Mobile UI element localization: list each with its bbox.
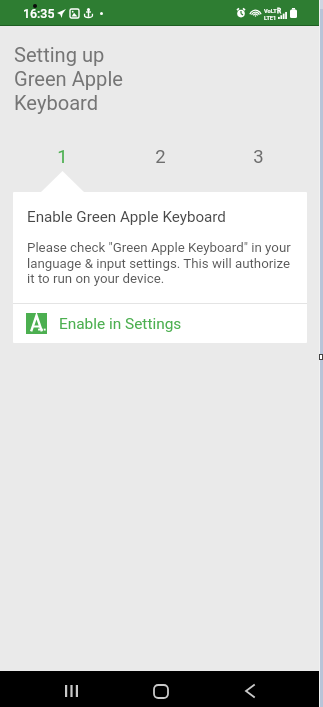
staticText: 16:35 <box>23 6 55 21</box>
staticText: 2 <box>155 146 166 168</box>
staticText: Keyboard <box>14 91 99 115</box>
button[interactable]: Enable in Settings <box>13 304 307 343</box>
staticText: Enable Green Apple Keyboard <box>27 208 226 226</box>
staticText: Please check "Green Apple Keyboard" in y… <box>27 240 293 286</box>
button[interactable]: Home <box>134 671 188 707</box>
staticText: Setting up <box>14 43 105 67</box>
staticText: Green Apple <box>14 67 123 91</box>
staticText: VoLT <box>264 8 277 15</box>
button[interactable]: Back <box>223 671 277 707</box>
staticText: 1 <box>57 146 68 168</box>
staticText: Enable in Settings <box>59 315 182 333</box>
button[interactable]: 2 <box>111 146 209 168</box>
button[interactable]: Recent apps <box>44 671 98 707</box>
staticText: LTE1 <box>264 15 277 22</box>
button[interactable]: 3 <box>209 146 307 168</box>
button[interactable]: 1 <box>13 146 111 168</box>
staticText: R <box>277 7 282 15</box>
staticText: 3 <box>253 146 264 168</box>
